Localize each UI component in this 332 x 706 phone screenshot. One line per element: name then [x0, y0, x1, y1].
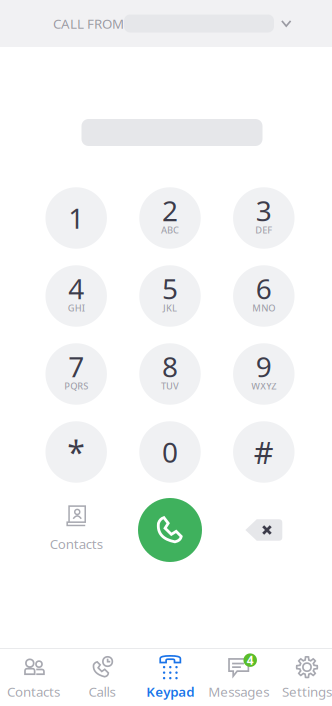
button[interactable]: 9	[217, 335, 311, 413]
staticText: DEF	[255, 224, 272, 236]
staticText: 8	[162, 348, 178, 385]
button[interactable]: 3	[217, 179, 311, 257]
staticText: 6	[256, 270, 272, 307]
staticText: 9	[256, 348, 272, 385]
staticText: *	[67, 431, 85, 473]
staticText: Contacts	[50, 535, 103, 553]
button[interactable]: Contacts	[29, 491, 123, 569]
button[interactable]: 4	[29, 257, 123, 335]
staticText: 5	[162, 270, 178, 307]
staticText: 7	[68, 348, 84, 385]
staticText: 4	[247, 652, 254, 668]
staticText: 0	[162, 433, 178, 471]
button[interactable]: 1	[29, 179, 123, 257]
button[interactable]: 0	[123, 413, 217, 491]
button[interactable]: Calls	[66, 649, 133, 706]
button[interactable]: *	[29, 413, 123, 491]
button[interactable]: #	[217, 413, 311, 491]
button[interactable]: Settings	[266, 649, 332, 706]
button[interactable]: 5	[123, 257, 217, 335]
button[interactable]: Contacts	[0, 649, 66, 706]
button[interactable]: 8	[123, 335, 217, 413]
staticText: WXYZ	[251, 380, 276, 392]
button[interactable]: Keypad	[133, 649, 199, 706]
button[interactable]: 4	[199, 649, 266, 706]
staticText: Messages	[208, 683, 269, 700]
button[interactable]: Call	[123, 491, 217, 569]
staticText: Calls	[88, 683, 115, 700]
button[interactable]: CALL FROM	[0, 0, 332, 47]
staticText: CALL FROM	[53, 15, 124, 32]
staticText: 4	[68, 270, 84, 307]
staticText: MNO	[252, 302, 275, 314]
staticText: PQRS	[64, 380, 88, 392]
staticText: 1	[68, 199, 84, 237]
staticText: ABC	[161, 224, 179, 236]
staticText: JKL	[163, 302, 177, 314]
staticText: 2	[162, 192, 178, 229]
staticText: #	[254, 432, 274, 472]
button[interactable]: 7	[29, 335, 123, 413]
staticText: Contacts	[7, 683, 60, 700]
button[interactable]: 6	[217, 257, 311, 335]
staticText: 3	[256, 192, 272, 229]
staticText: GHI	[68, 302, 85, 314]
staticText: Keypad	[146, 683, 194, 700]
button[interactable]: Delete	[217, 491, 311, 569]
button[interactable]: 2	[123, 179, 217, 257]
staticText: Settings	[282, 683, 332, 700]
staticText: TUV	[161, 380, 179, 392]
